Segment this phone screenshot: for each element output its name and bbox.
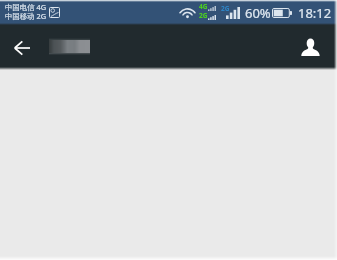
staticText: 2G	[221, 4, 230, 13]
button[interactable]: Back	[2, 28, 42, 68]
button[interactable]	[47, 38, 91, 54]
staticText: 2G	[199, 11, 208, 20]
staticText: 4G	[199, 2, 208, 11]
staticText: 中国移动 2G	[5, 11, 47, 21]
staticText: 60%	[245, 4, 271, 22]
button[interactable]: Profile	[295, 31, 325, 61]
staticText: 中国电信 4G	[5, 2, 47, 12]
staticText: 18:12	[298, 4, 332, 22]
